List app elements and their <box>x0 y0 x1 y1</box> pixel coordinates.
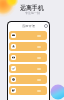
button[interactable] <box>9 64 47 73</box>
staticText: 专注每一刻 <box>25 11 40 15</box>
staticText: 远离手机 <box>20 4 44 11</box>
button[interactable] <box>9 42 47 51</box>
button[interactable] <box>9 75 47 84</box>
button[interactable] <box>9 53 47 62</box>
staticText: 应用管理 <box>8 24 49 28</box>
button[interactable] <box>9 31 47 40</box>
button[interactable] <box>9 86 47 95</box>
button[interactable]: Settings <box>44 24 48 28</box>
